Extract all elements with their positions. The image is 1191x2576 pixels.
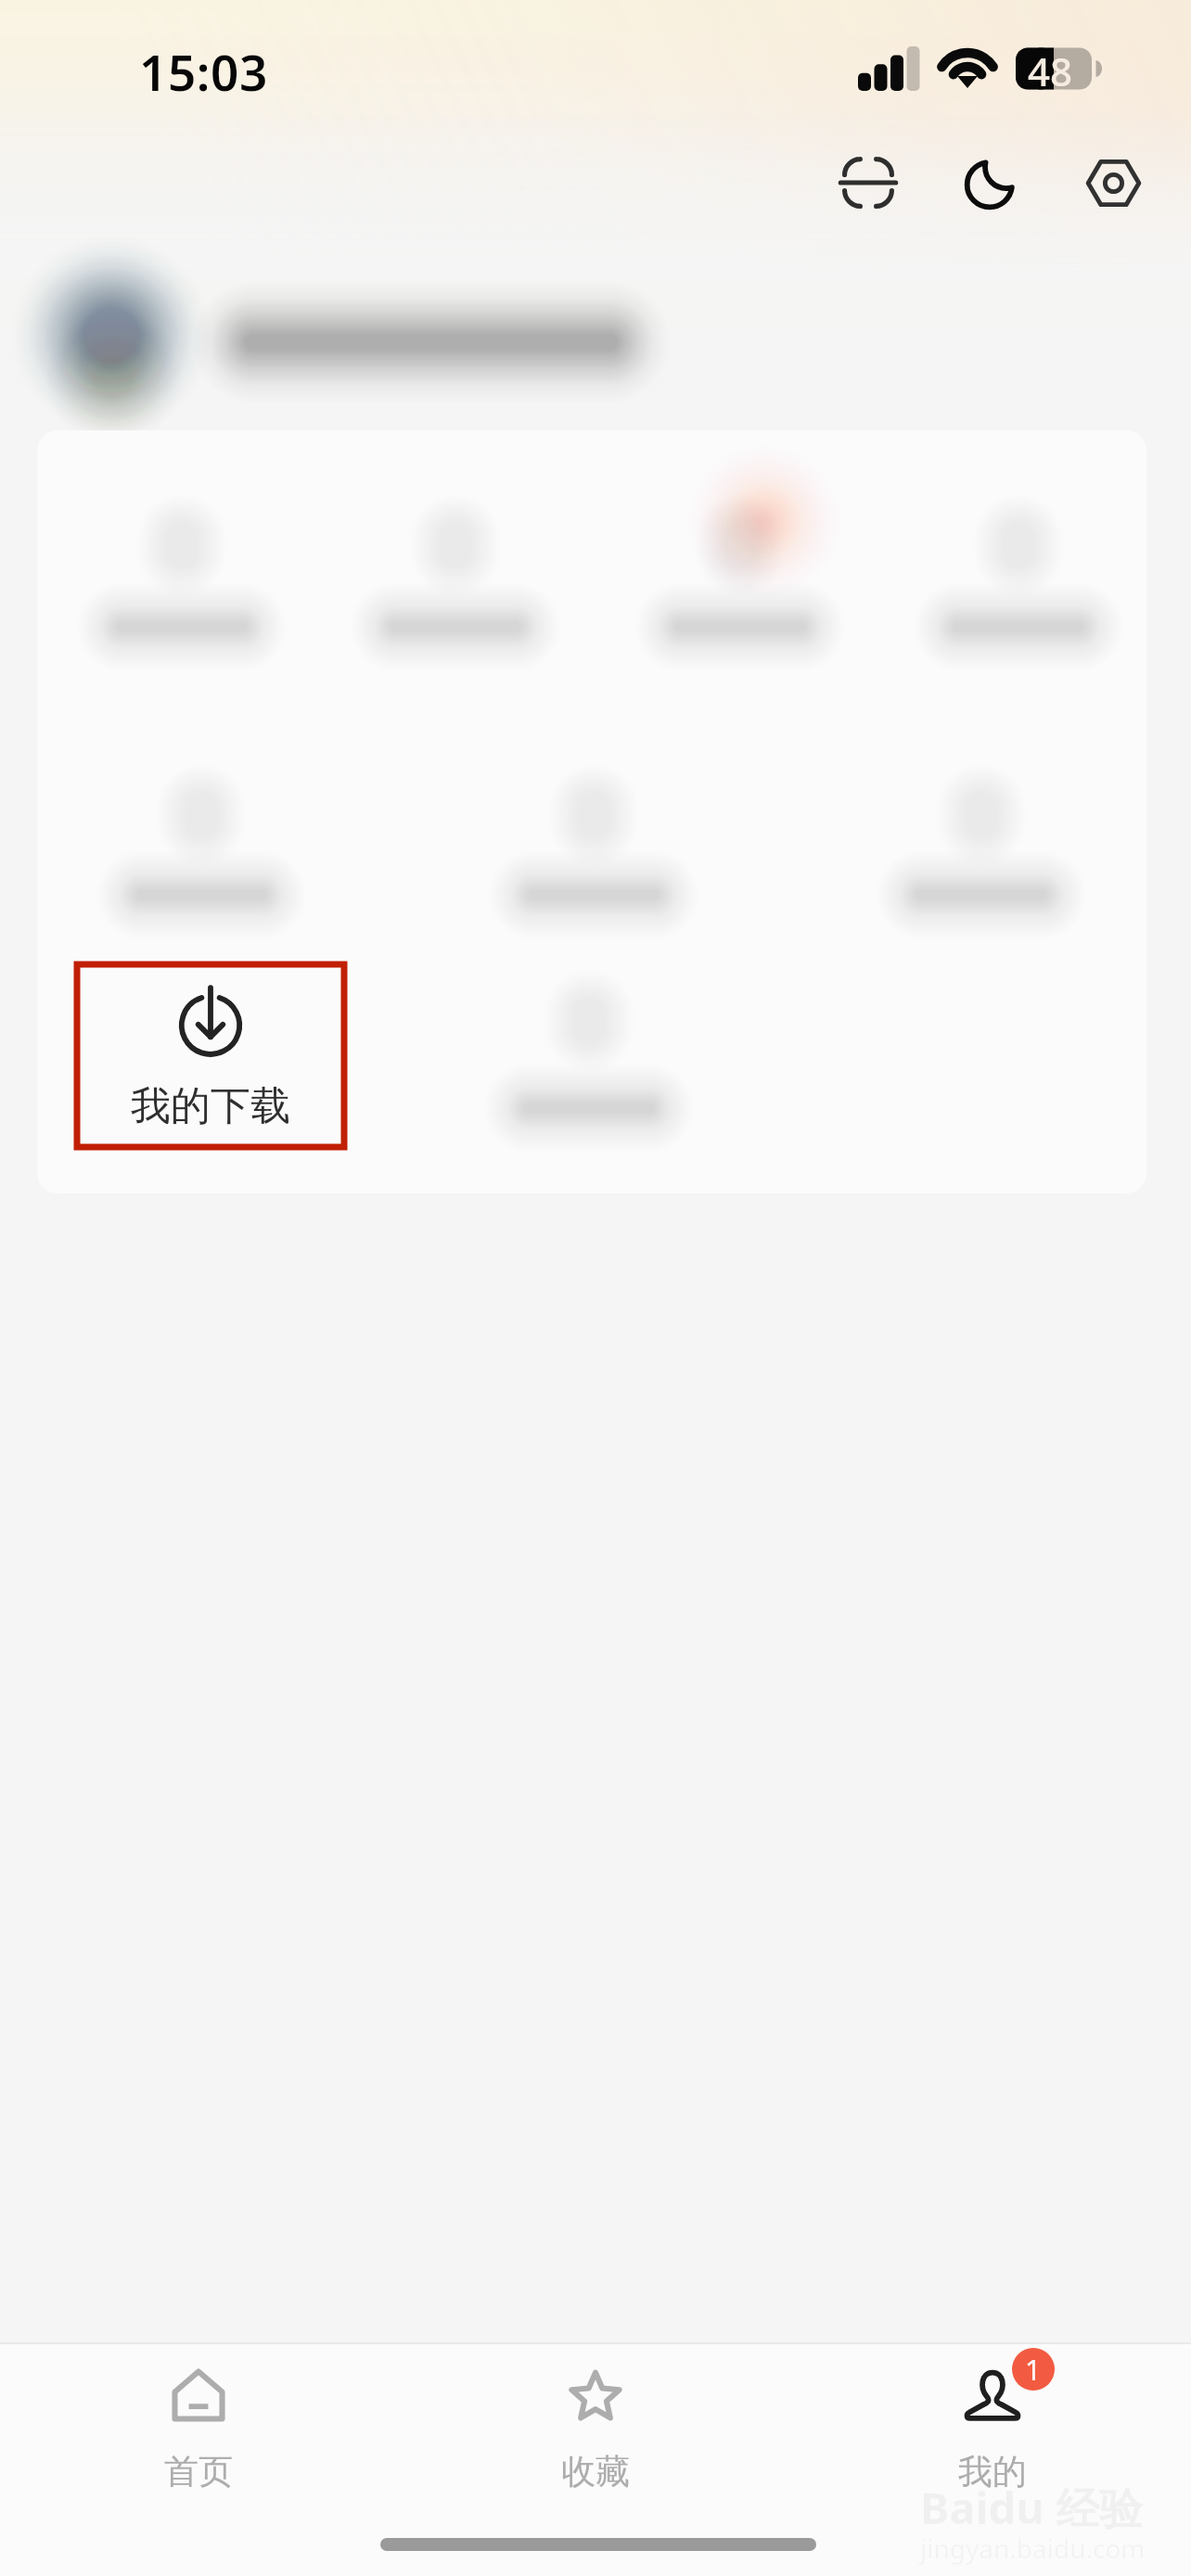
button[interactable]: Grid item 7 xyxy=(848,764,1115,947)
button[interactable]: Grid item 6 xyxy=(460,764,727,947)
staticText: 15:03 xyxy=(139,38,268,105)
staticText: 1 xyxy=(1025,2351,1042,2389)
button[interactable]: Settings xyxy=(1060,130,1166,236)
button[interactable]: Grid item 8 xyxy=(455,974,723,1156)
staticText: 我的 xyxy=(958,2450,1027,2493)
button[interactable]: Grid item 5 xyxy=(68,764,335,947)
button[interactable]: 收藏 xyxy=(397,2342,794,2493)
button[interactable]: Grid item 4 xyxy=(885,495,1146,678)
button[interactable]: Grid item 3 xyxy=(607,495,874,678)
staticText: 我的下载 xyxy=(131,1081,290,1131)
button[interactable]: 1 xyxy=(794,2342,1191,2493)
staticText: Baidu 经验 xyxy=(920,2478,1143,2537)
button[interactable]: Grid item 1 xyxy=(48,495,315,678)
staticText: 收藏 xyxy=(561,2450,630,2493)
button[interactable]: 我的下载 xyxy=(77,964,344,1147)
button[interactable]: Scan xyxy=(815,130,921,236)
button[interactable]: Grid item 2 xyxy=(322,495,589,678)
staticText: 首页 xyxy=(164,2450,233,2493)
button[interactable]: Night mode xyxy=(938,130,1044,236)
button[interactable]: Account profile xyxy=(33,261,683,410)
button[interactable]: 首页 xyxy=(0,2342,397,2493)
staticText: 48 xyxy=(1028,45,1073,97)
